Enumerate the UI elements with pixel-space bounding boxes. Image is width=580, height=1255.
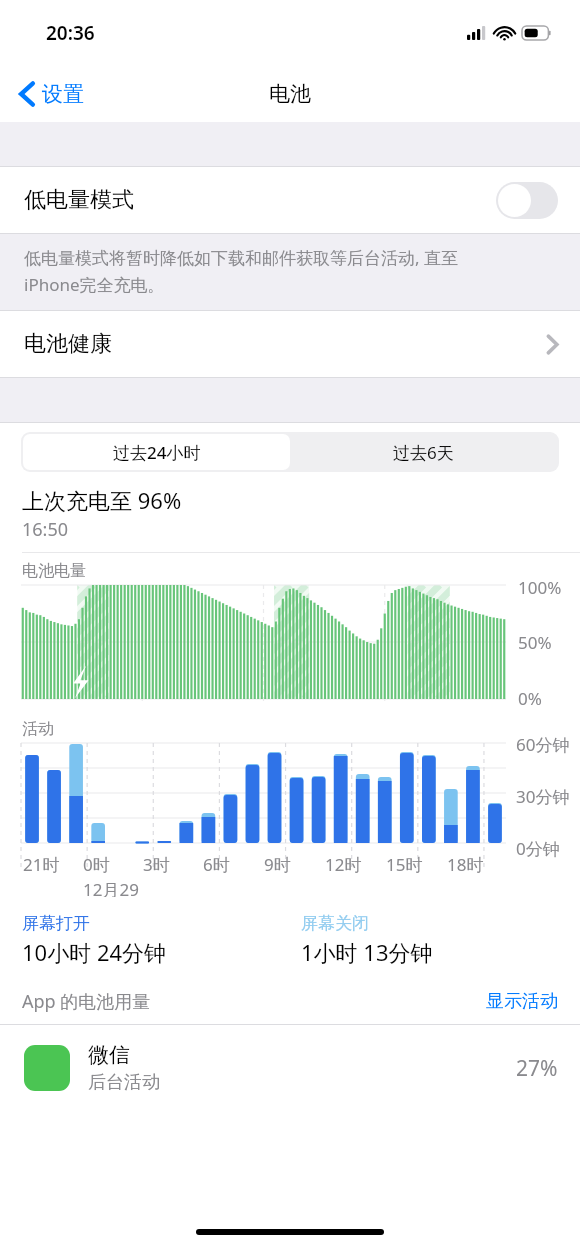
staticText: 0% [518, 687, 542, 710]
staticText: 上次充电至 96% [22, 485, 182, 515]
staticText: 100% [518, 576, 562, 599]
staticText: 设置 [42, 81, 84, 107]
staticText: 微信 [88, 1042, 130, 1068]
staticText: 10小时 24分钟 [22, 937, 167, 967]
button[interactable]: 微信 [0, 1025, 580, 1111]
button[interactable]: 设置 [14, 75, 90, 113]
staticText: 6时 [203, 853, 230, 876]
staticText: 20:36 [46, 20, 95, 46]
staticText: 50% [518, 631, 552, 654]
staticText: 后台活动 [88, 1071, 160, 1094]
staticText: 3时 [143, 853, 170, 876]
button[interactable]: 过去24小时 [23, 434, 290, 470]
staticText: 电池健康 [24, 330, 112, 358]
staticText: 0分钟 [516, 837, 560, 860]
staticText: 电池电量 [22, 561, 86, 581]
staticText: 16:50 [22, 517, 69, 542]
button[interactable]: 低电量模式 [0, 167, 580, 233]
staticText: 60分钟 [516, 733, 570, 756]
staticText: 屏幕关闭 [301, 913, 369, 934]
staticText: 15时 [386, 853, 423, 876]
staticText: 30分钟 [516, 785, 570, 808]
button[interactable]: Low Power Mode toggle [496, 182, 558, 219]
staticText: 电池 [269, 81, 311, 107]
staticText: 21时 [23, 853, 60, 876]
button[interactable]: 过去6天 [290, 434, 557, 470]
staticText: 1小时 13分钟 [301, 937, 433, 967]
staticText: 活动 [22, 719, 54, 739]
staticText: 27% [516, 1054, 558, 1083]
staticText: 低电量模式将暂时降低如下载和邮件获取等后台活动, 直至 iPhone完全充电。 [24, 246, 458, 296]
button[interactable]: 电池健康 [0, 311, 580, 377]
staticText: 9时 [264, 853, 291, 876]
staticText: 显示活动 [486, 990, 558, 1013]
staticText: 过去6天 [393, 441, 454, 464]
staticText: 低电量模式 [24, 186, 134, 214]
staticText: App 的电池用量 [22, 989, 151, 1014]
staticText: 12时 [325, 853, 362, 876]
staticText: 0时 [83, 853, 110, 876]
staticText: 过去24小时 [113, 441, 201, 464]
staticText: 12月29日 [83, 878, 143, 897]
staticText: 屏幕打开 [22, 913, 90, 934]
button[interactable]: 显示活动 [486, 990, 558, 1013]
staticText: 18时 [447, 853, 484, 876]
